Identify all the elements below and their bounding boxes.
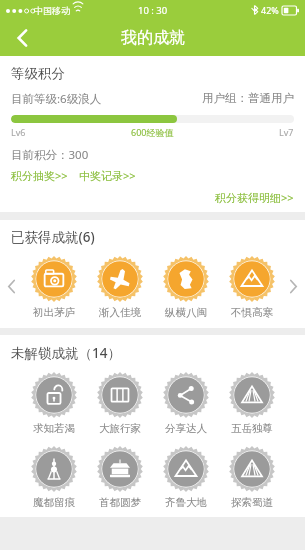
staticText: 10 : 30	[138, 4, 168, 17]
staticText: 积分抽奖>>	[11, 168, 68, 183]
button[interactable]: 探索蜀道	[219, 446, 285, 509]
staticText: 齐鲁大地	[165, 496, 207, 509]
button[interactable]: Previous	[3, 256, 20, 316]
staticText: 已获得成就(6)	[11, 228, 95, 246]
staticText: 等级积分	[11, 65, 65, 82]
staticText: Lv7	[279, 126, 294, 138]
staticText: 不惧高寒	[231, 306, 273, 319]
staticText: 未解锁成就（14）	[11, 344, 121, 362]
button[interactable]: 五岳独尊	[219, 372, 285, 435]
button[interactable]: 魔都留痕	[20, 446, 87, 509]
button[interactable]: 首都圆梦	[87, 446, 153, 509]
staticText: 600经验值	[131, 126, 174, 138]
button[interactable]: 求知若渴	[20, 372, 87, 435]
staticText: 求知若渴	[33, 422, 75, 435]
staticText: 魔都留痕	[33, 496, 75, 509]
staticText: 纵横八闽	[165, 306, 207, 319]
button[interactable]: Next	[285, 256, 302, 316]
staticText: 我的成就	[121, 28, 185, 48]
staticText: 大旅行家	[99, 422, 141, 435]
staticText: 42%	[261, 4, 279, 16]
staticText: Lv6	[11, 126, 26, 138]
staticText: 目前等级:6级浪人	[11, 91, 102, 107]
button[interactable]: 齐鲁大地	[153, 446, 219, 509]
staticText: 积分获得明细>>	[215, 190, 294, 205]
button[interactable]: 积分抽奖>>	[11, 168, 68, 183]
button[interactable]: 不惧高寒	[219, 256, 285, 319]
staticText: 五岳独尊	[231, 422, 273, 435]
staticText: 初出茅庐	[33, 306, 75, 319]
button[interactable]: 大旅行家	[87, 372, 153, 435]
staticText: 中奖记录>>	[79, 168, 136, 183]
button[interactable]: 渐入佳境	[87, 256, 153, 319]
button[interactable]: Back	[0, 20, 44, 56]
staticText: 用户组：普通用户	[202, 91, 294, 105]
staticText: 首都圆梦	[99, 496, 141, 509]
staticText: 中国移动	[34, 5, 70, 16]
button[interactable]: 中奖记录>>	[79, 168, 136, 183]
button[interactable]: 积分获得明细>>	[215, 190, 294, 205]
button[interactable]: 分享达人	[153, 372, 219, 435]
staticText: 渐入佳境	[99, 306, 141, 319]
staticText: 分享达人	[165, 422, 207, 435]
staticText: 目前积分：300	[11, 147, 89, 163]
button[interactable]: 初出茅庐	[20, 256, 87, 319]
staticText: 探索蜀道	[231, 496, 273, 509]
button[interactable]: 纵横八闽	[153, 256, 219, 319]
